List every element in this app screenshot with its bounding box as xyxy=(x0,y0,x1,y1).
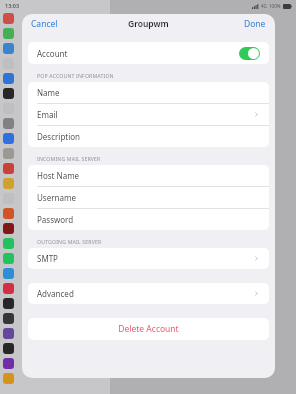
button[interactable]: Advanced xyxy=(28,283,269,304)
staticText: Account xyxy=(37,48,68,59)
button[interactable]: Cancel xyxy=(22,14,67,34)
staticText: Advanced xyxy=(37,288,74,299)
staticText: Username xyxy=(37,192,76,203)
button[interactable]: Delete Account xyxy=(28,318,269,340)
staticText: Host Name xyxy=(37,170,80,181)
staticText: Delete Account xyxy=(118,323,179,335)
button[interactable]: SMTP xyxy=(28,248,269,269)
staticText: Description xyxy=(37,131,81,142)
button[interactable]: Email xyxy=(28,104,269,125)
button[interactable]: Done xyxy=(235,14,275,34)
staticText: SMTP xyxy=(37,253,58,264)
button[interactable]: Host Name xyxy=(28,165,269,186)
staticText: Cancel xyxy=(31,18,58,30)
staticText: POP ACCOUNT INFORMATION xyxy=(37,72,114,79)
staticText: Done xyxy=(244,18,266,30)
staticText: 100% xyxy=(269,3,281,9)
staticText: Email xyxy=(37,109,58,120)
button[interactable]: Username xyxy=(28,187,269,208)
staticText: 4G xyxy=(261,3,267,9)
button[interactable]: Account enabled xyxy=(239,47,260,60)
staticText: 13:03 xyxy=(5,2,20,9)
button[interactable]: Account xyxy=(28,42,269,64)
button[interactable]: Password xyxy=(28,209,269,230)
staticText: Groupwm xyxy=(128,18,169,30)
staticText: OUTGOING MAIL SERVER xyxy=(37,238,102,245)
staticText: Password xyxy=(37,214,74,225)
staticText: INCOMING MAIL SERVER xyxy=(37,155,101,162)
staticText: Name xyxy=(37,87,60,98)
button[interactable]: Name xyxy=(28,82,269,103)
button[interactable]: Description xyxy=(28,126,269,147)
